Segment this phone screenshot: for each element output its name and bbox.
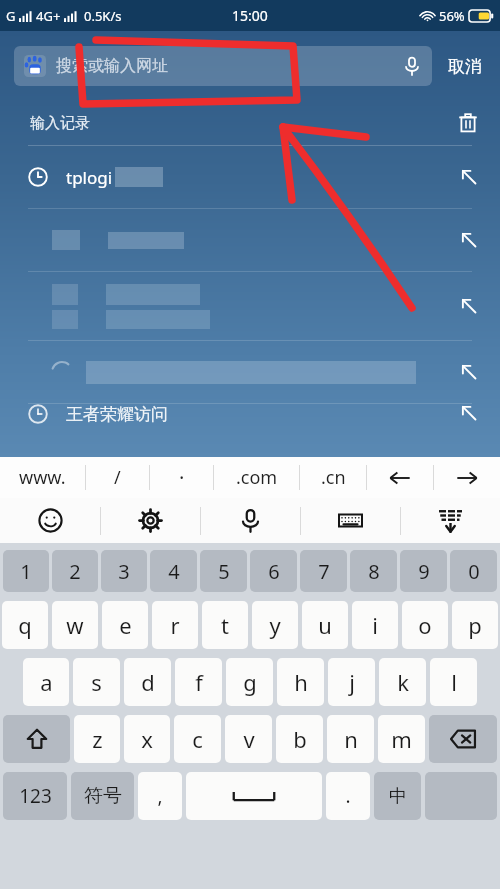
button[interactable]: j bbox=[328, 658, 375, 706]
staticText: h bbox=[294, 667, 308, 697]
button[interactable]: · bbox=[150, 457, 213, 498]
button[interactable]: .cn bbox=[300, 457, 366, 498]
button[interactable]: Emoji bbox=[0, 498, 100, 543]
button[interactable]: s bbox=[73, 658, 120, 706]
button[interactable]: Fill query bbox=[460, 363, 478, 381]
button[interactable]: b bbox=[276, 715, 323, 763]
staticText: 6 bbox=[268, 558, 280, 585]
staticText: 4 bbox=[168, 558, 180, 585]
staticText: . bbox=[345, 783, 351, 809]
staticText: d bbox=[141, 667, 155, 697]
button[interactable]: u bbox=[302, 601, 348, 649]
button[interactable]: t bbox=[202, 601, 248, 649]
staticText: 王者荣耀访问 bbox=[66, 404, 168, 425]
staticText: 4G+ bbox=[36, 7, 61, 25]
button[interactable]: Fill query bbox=[460, 297, 478, 315]
staticText: 7 bbox=[318, 558, 330, 585]
button[interactable]: o bbox=[402, 601, 448, 649]
button[interactable]: 9 bbox=[400, 550, 447, 592]
button[interactable]: 取消 bbox=[444, 52, 486, 81]
button[interactable]: k bbox=[379, 658, 426, 706]
button[interactable]: 7 bbox=[300, 550, 347, 592]
button[interactable]: Clear history bbox=[458, 113, 478, 133]
button[interactable]: m bbox=[378, 715, 425, 763]
button[interactable]: g bbox=[226, 658, 273, 706]
button[interactable]: c bbox=[174, 715, 221, 763]
button[interactable]: 符号 bbox=[71, 772, 134, 820]
staticText: www. bbox=[19, 465, 66, 490]
button[interactable]: Backspace bbox=[429, 715, 497, 763]
staticText: 1 bbox=[20, 558, 32, 585]
button[interactable]: 1 bbox=[3, 550, 49, 592]
button[interactable]: q bbox=[2, 601, 48, 649]
staticText: f bbox=[195, 667, 203, 697]
button[interactable]: d bbox=[124, 658, 171, 706]
button[interactable]: Fill query bbox=[460, 168, 478, 186]
button[interactable]: Keyboard layout bbox=[301, 498, 400, 543]
button[interactable]: Voice input bbox=[201, 498, 300, 543]
button[interactable]: Settings bbox=[101, 498, 200, 543]
button[interactable]: . bbox=[326, 772, 370, 820]
button[interactable]: 3 bbox=[101, 550, 147, 592]
staticText: x bbox=[141, 724, 153, 754]
button[interactable]: Fill query bbox=[460, 231, 478, 249]
staticText: i bbox=[372, 610, 378, 640]
staticText: / bbox=[114, 465, 121, 490]
button[interactable]: 0 bbox=[450, 550, 497, 592]
button[interactable]: 6 bbox=[250, 550, 297, 592]
button[interactable]: Voice search bbox=[402, 56, 422, 76]
button[interactable]: h bbox=[277, 658, 324, 706]
button[interactable]: 5 bbox=[200, 550, 247, 592]
staticText: b bbox=[293, 724, 307, 754]
button[interactable]: 输入记录 bbox=[0, 101, 500, 145]
staticText: y bbox=[269, 610, 281, 640]
staticText: u bbox=[318, 610, 332, 640]
button[interactable]: Hide keyboard bbox=[401, 498, 500, 543]
button[interactable]: Previous bbox=[367, 457, 433, 498]
button[interactable]: r bbox=[152, 601, 198, 649]
button[interactable]: www. bbox=[0, 457, 85, 498]
button[interactable]: Fill query bbox=[0, 209, 500, 271]
button[interactable]: Fill query bbox=[0, 341, 500, 403]
button[interactable]: w bbox=[52, 601, 98, 649]
button[interactable]: , bbox=[138, 772, 182, 820]
button[interactable]: x bbox=[124, 715, 170, 763]
staticText: · bbox=[179, 464, 185, 491]
staticText: 中 bbox=[389, 785, 407, 808]
staticText: n bbox=[344, 724, 358, 754]
button[interactable]: 中 bbox=[374, 772, 421, 820]
button[interactable]: Next bbox=[434, 457, 500, 498]
button[interactable]: f bbox=[175, 658, 222, 706]
staticText: q bbox=[18, 610, 32, 640]
button[interactable]: 8 bbox=[350, 550, 397, 592]
staticText: z bbox=[92, 724, 103, 754]
button[interactable]: e bbox=[102, 601, 148, 649]
staticText: g bbox=[243, 667, 257, 697]
button[interactable]: 2 bbox=[52, 550, 98, 592]
button[interactable]: Fill query bbox=[0, 272, 500, 340]
button[interactable]: Space bbox=[186, 772, 322, 820]
button[interactable]: 4 bbox=[150, 550, 197, 592]
button[interactable]: p bbox=[452, 601, 498, 649]
button[interactable]: y bbox=[252, 601, 298, 649]
button[interactable]: .com bbox=[214, 457, 299, 498]
staticText: , bbox=[157, 783, 163, 809]
button[interactable]: z bbox=[74, 715, 120, 763]
button[interactable]: l bbox=[430, 658, 477, 706]
staticText: r bbox=[170, 610, 180, 640]
button[interactable]: 123 bbox=[3, 772, 67, 820]
staticText: 8 bbox=[368, 558, 380, 585]
button[interactable]: Shift bbox=[3, 715, 70, 763]
button[interactable]: a bbox=[23, 658, 69, 706]
staticText: 0.5K/s bbox=[84, 7, 122, 25]
button[interactable]: / bbox=[86, 457, 149, 498]
button[interactable]: tplogi bbox=[0, 146, 500, 208]
button[interactable]: 搜索或输入网址 bbox=[14, 46, 432, 86]
staticText: m bbox=[391, 724, 412, 754]
staticText: p bbox=[468, 610, 482, 640]
staticText: tplogi bbox=[66, 166, 113, 189]
button[interactable]: n bbox=[327, 715, 374, 763]
button[interactable]: v bbox=[225, 715, 272, 763]
button[interactable]: i bbox=[352, 601, 398, 649]
